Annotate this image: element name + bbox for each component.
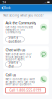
staticText: virtual assistant or a [5,55,30,58]
staticText: Community. [5,30,21,34]
button[interactable]: Call 1-800-555-0199 [5,88,45,93]
button[interactable]: Start a chat [5,62,21,67]
staticText: 9:41 [2,0,6,4]
staticText: Start a question [8,36,21,43]
staticText: Call us [5,72,16,77]
staticText: Back [4,6,10,10]
staticText: We'll connect you with [5,77,35,81]
staticText: Not seeing what you need? [3,14,43,17]
staticText: Chat with us [5,47,25,52]
staticText: Start a chat [8,61,18,68]
button[interactable]: Back [0,4,11,11]
button[interactable]: Start a question [5,37,24,42]
staticText: Call 1-800-555-0199 [9,88,41,92]
staticText: with your question. [5,82,32,86]
staticText: Get help from trusted [5,25,33,29]
staticText: members in the [5,28,24,31]
staticText: Ask the Community [5,20,36,25]
staticText: support agent. [5,57,25,61]
staticText: an agent who can help [5,80,35,83]
staticText: Start a chat with our [5,52,31,56]
staticText: ..ıl [43,1,47,4]
